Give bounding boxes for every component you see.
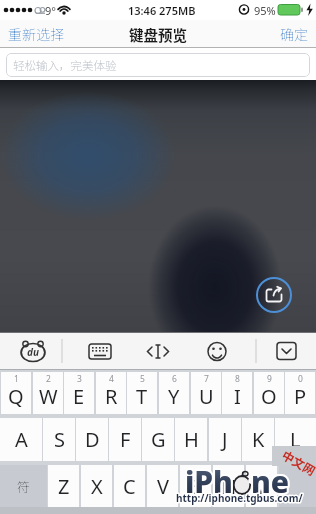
button[interactable]: du (16, 337, 50, 365)
staticText: E (73, 383, 85, 410)
staticText: 6 (172, 373, 177, 385)
staticText: 1 (14, 373, 19, 385)
staticText: 2 (46, 373, 51, 385)
staticText: X (91, 473, 103, 500)
button[interactable]: D (76, 418, 108, 461)
button[interactable] (144, 337, 172, 365)
button[interactable] (203, 337, 231, 365)
button[interactable]: S (43, 418, 75, 461)
staticText: J (222, 426, 228, 453)
staticText: Y (168, 383, 180, 410)
button[interactable]: C (114, 465, 145, 507)
staticText: 轻松输入，完美体验 (13, 57, 117, 74)
staticText: O (261, 383, 277, 410)
button[interactable]: 3 (64, 372, 94, 414)
button[interactable]: 8 (222, 372, 252, 414)
button[interactable] (279, 465, 316, 507)
button[interactable]: G (142, 418, 174, 461)
button[interactable]: 5 (127, 372, 157, 414)
staticText: C (123, 473, 136, 500)
button[interactable]: 1 (1, 372, 31, 414)
staticText: 键盘预览 (129, 24, 187, 45)
staticText: 重新选择 (8, 24, 64, 44)
button[interactable]: L (275, 418, 316, 461)
button[interactable]: 0 (285, 372, 315, 414)
staticText: T (136, 383, 148, 410)
staticText: 5 (140, 373, 145, 385)
button[interactable]: 9 (254, 372, 284, 414)
staticText: A (15, 426, 28, 453)
staticText: du (27, 345, 39, 359)
button[interactable]: M (246, 465, 277, 507)
button[interactable]: A (0, 418, 42, 461)
button[interactable]: 符 (0, 465, 47, 507)
staticText: 确定 (280, 24, 308, 44)
staticText: 符 (17, 477, 31, 496)
staticText: Q (8, 383, 24, 410)
button[interactable] (255, 276, 293, 314)
staticText: 3 (77, 373, 82, 385)
button[interactable]: F (109, 418, 141, 461)
staticText: 95% (254, 3, 276, 18)
staticText: 9 (267, 373, 272, 385)
button[interactable]: X (81, 465, 112, 507)
staticText: 中文网 (279, 446, 316, 479)
staticText: 0 (298, 373, 303, 385)
button[interactable]: 2 (33, 372, 63, 414)
button[interactable]: J (209, 418, 241, 461)
staticText: 8 (235, 373, 240, 385)
staticText: K (252, 426, 265, 453)
button[interactable]: K (242, 418, 274, 461)
staticText: I (234, 383, 241, 410)
staticText: N (221, 473, 237, 500)
button[interactable]: B (180, 465, 211, 507)
button[interactable]: 轻松输入，完美体验 (6, 53, 310, 77)
staticText: http://iphone.tgbus.com/ (176, 491, 303, 505)
staticText: 9° (45, 3, 56, 18)
staticText: F (120, 426, 131, 453)
button[interactable]: V (147, 465, 178, 507)
staticText: P (294, 383, 307, 410)
staticText: U (199, 383, 214, 410)
staticText: B (189, 473, 202, 500)
button[interactable] (86, 337, 114, 365)
button[interactable]: 确定 (276, 20, 312, 48)
staticText: Z (58, 473, 70, 500)
staticText: L (290, 426, 301, 453)
button[interactable]: N (213, 465, 244, 507)
staticText: W (39, 383, 58, 410)
staticText: ne (251, 461, 289, 502)
staticText: R (105, 383, 118, 410)
staticText: 13:46 275MB (128, 3, 196, 18)
staticText: http://iphone.tgbus.com/ (176, 491, 303, 505)
button[interactable]: 4 (96, 372, 126, 414)
button[interactable]: 6 (159, 372, 189, 414)
staticText: 4 (109, 373, 114, 385)
staticText: M (252, 473, 271, 500)
staticText: iPh (185, 461, 233, 502)
button[interactable]: 重新选择 (4, 20, 68, 48)
button[interactable]: Z (48, 465, 79, 507)
staticText: V (157, 473, 169, 500)
staticText: iPh (185, 461, 233, 502)
staticText: 7 (204, 373, 209, 385)
staticText: S (54, 426, 65, 453)
button[interactable]: H (175, 418, 207, 461)
staticText: G (151, 426, 166, 453)
button[interactable]: 7 (191, 372, 221, 414)
button[interactable] (272, 337, 302, 365)
staticText: D (85, 426, 100, 453)
staticText: H (184, 426, 199, 453)
staticText: ne (251, 461, 289, 502)
